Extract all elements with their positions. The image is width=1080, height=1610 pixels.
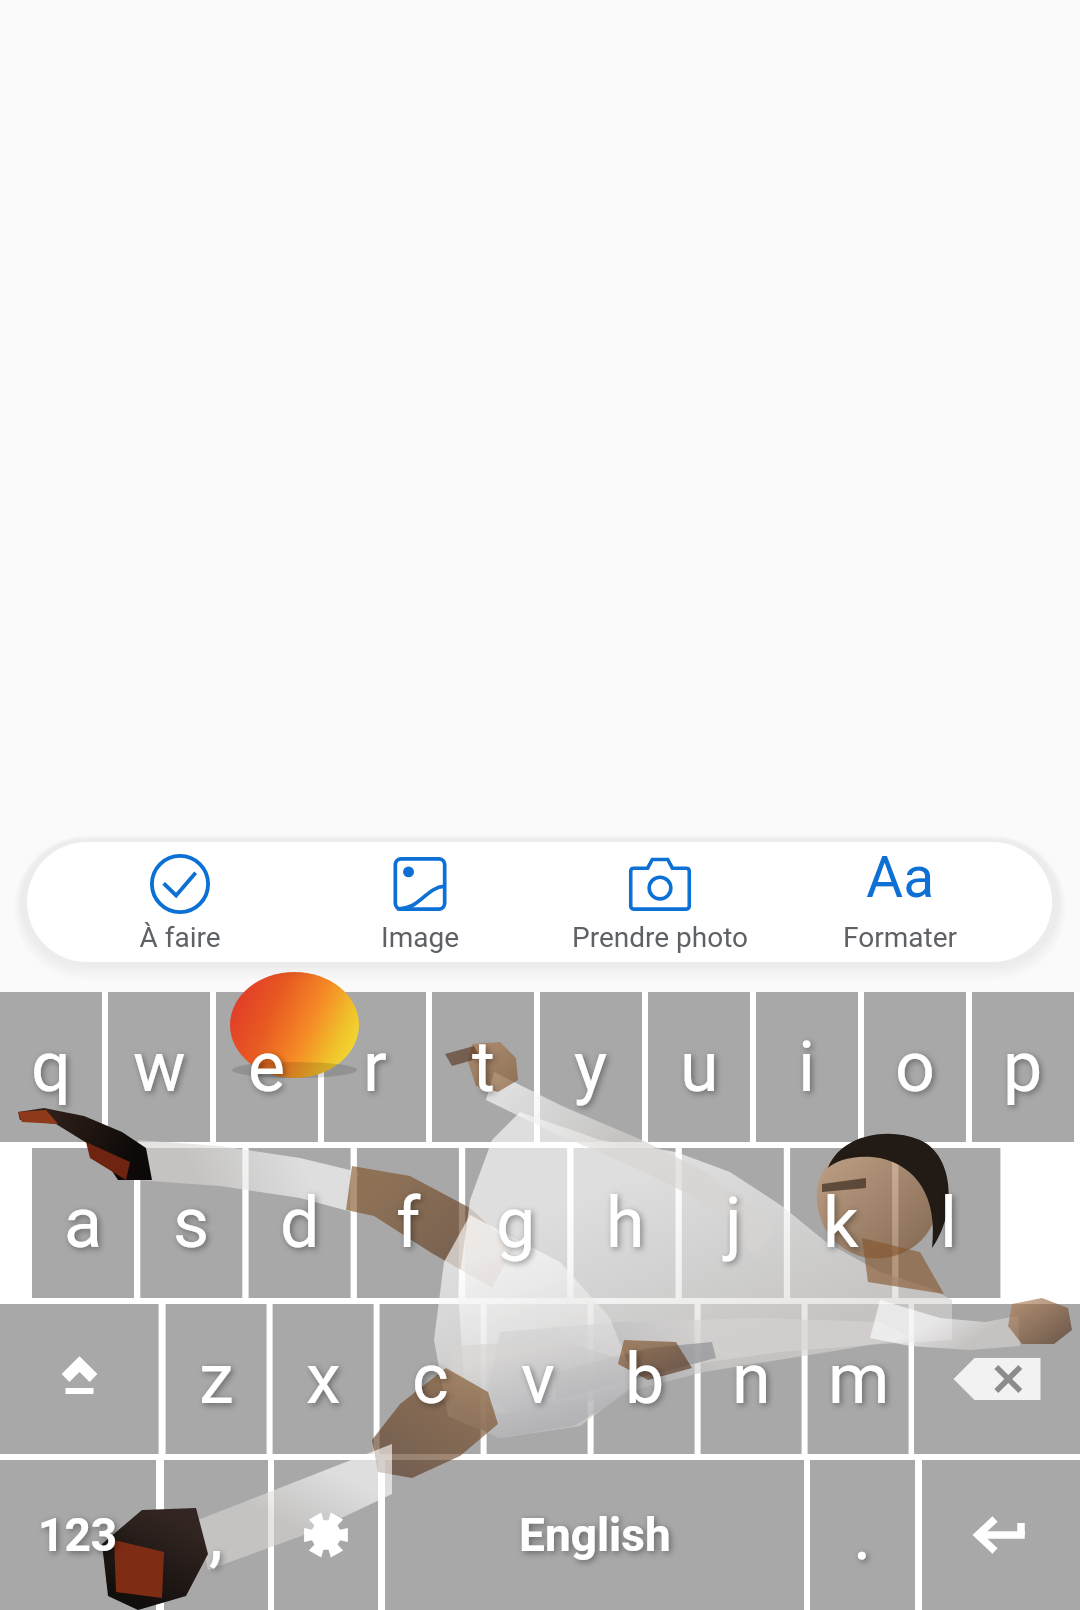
button[interactable]: Backspace <box>914 1304 1080 1454</box>
button[interactable]: y <box>540 992 642 1142</box>
staticText: d <box>280 1182 320 1264</box>
staticText: Image <box>381 921 459 954</box>
staticText: b <box>625 1338 665 1420</box>
staticText: a <box>64 1182 103 1264</box>
staticText: Prendre photo <box>572 921 748 954</box>
button[interactable]: t <box>432 992 534 1142</box>
button[interactable]: p <box>972 992 1074 1142</box>
staticText: x <box>306 1338 341 1420</box>
staticText: v <box>521 1338 555 1420</box>
staticText: , <box>209 1494 223 1576</box>
staticText: c <box>412 1338 449 1420</box>
button[interactable]: Settings <box>274 1460 378 1610</box>
button[interactable]: v <box>487 1304 588 1454</box>
button[interactable]: u <box>648 992 750 1142</box>
staticText: . <box>853 1494 872 1576</box>
button[interactable]: j <box>682 1148 784 1298</box>
button[interactable]: x <box>273 1304 374 1454</box>
button[interactable]: w <box>108 992 210 1142</box>
button[interactable]: r <box>324 992 426 1142</box>
button[interactable]: . <box>810 1460 915 1610</box>
button[interactable]: m <box>808 1304 909 1454</box>
staticText: i <box>798 1026 816 1108</box>
button[interactable]: b <box>594 1304 695 1454</box>
staticText: Formater <box>843 921 957 954</box>
staticText: À faire <box>139 921 221 954</box>
staticText: English <box>519 1508 671 1562</box>
button[interactable]: o <box>864 992 966 1142</box>
staticText: z <box>199 1338 234 1420</box>
button[interactable]: a <box>32 1148 134 1298</box>
button[interactable]: Formater <box>780 842 1020 962</box>
staticText: y <box>574 1026 608 1108</box>
button[interactable]: , <box>164 1460 268 1610</box>
staticText: s <box>173 1182 210 1264</box>
staticText: m <box>828 1338 890 1420</box>
staticText: f <box>396 1182 421 1264</box>
button[interactable]: d <box>249 1148 351 1298</box>
staticText: k <box>823 1182 859 1264</box>
button[interactable]: f <box>357 1148 459 1298</box>
staticText: h <box>606 1182 645 1264</box>
button[interactable]: k <box>790 1148 892 1298</box>
button[interactable]: 123 <box>0 1460 156 1610</box>
staticText: l <box>940 1182 958 1264</box>
staticText: o <box>895 1026 935 1108</box>
button[interactable]: c <box>380 1304 481 1454</box>
button[interactable]: g <box>465 1148 567 1298</box>
button[interactable]: h <box>574 1148 676 1298</box>
staticText: t <box>472 1026 495 1108</box>
staticText: q <box>31 1026 71 1108</box>
staticText: j <box>725 1182 742 1264</box>
button[interactable]: Prendre photo <box>540 842 780 962</box>
button[interactable]: Image <box>300 842 540 962</box>
button[interactable]: À faire <box>60 842 300 962</box>
button[interactable]: z <box>166 1304 267 1454</box>
button[interactable]: Shift <box>0 1304 159 1454</box>
staticText: e <box>248 1026 286 1108</box>
button[interactable]: q <box>0 992 102 1142</box>
staticText: Aa <box>866 844 935 906</box>
button[interactable]: e <box>216 992 318 1142</box>
button[interactable]: i <box>756 992 858 1142</box>
button[interactable]: s <box>140 1148 242 1298</box>
staticText: g <box>496 1182 536 1264</box>
button[interactable]: Enter <box>922 1460 1080 1610</box>
button[interactable]: n <box>701 1304 802 1454</box>
button[interactable]: l <box>898 1148 1000 1298</box>
staticText: n <box>732 1338 771 1420</box>
button[interactable]: English <box>385 1460 804 1610</box>
staticText: p <box>1003 1026 1043 1108</box>
staticText: w <box>133 1026 186 1108</box>
staticText: r <box>363 1026 387 1108</box>
staticText: u <box>680 1026 719 1108</box>
staticText: 123 <box>38 1508 118 1562</box>
